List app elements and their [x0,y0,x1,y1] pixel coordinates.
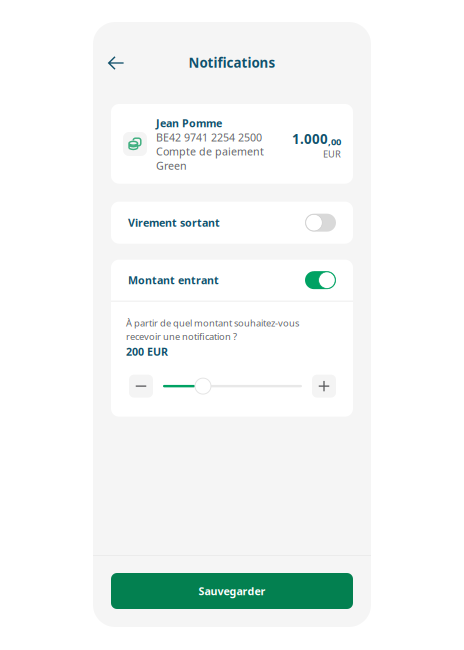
button[interactable]: Virement sortant [111,202,353,244]
staticText: Virement sortant [128,216,220,230]
staticText: 200 EUR [126,344,168,359]
staticText: Green [156,158,187,173]
staticText: Notifications [188,54,275,71]
staticText: 1.000 [292,130,328,148]
staticText: Montant entrant [128,273,219,287]
staticText: recevoir une notification ? [126,330,237,342]
staticText: BE42 9741 2254 2500 [156,130,262,144]
button[interactable]: Sauvegarder [111,573,353,609]
staticText: Compte de paiement [156,144,264,158]
staticText: EUR [323,148,341,160]
button[interactable]: Increase amount [312,375,336,398]
staticText: Jean Pomme [156,116,222,130]
button[interactable]: Montant entrant [111,260,353,301]
button[interactable]: Decrease amount [129,375,153,398]
staticText: ,00 [328,135,341,148]
staticText: Sauvegarder [198,584,265,598]
staticText: À partir de quel montant souhaitez-vous [126,317,299,329]
button[interactable]: Back [103,50,129,76]
